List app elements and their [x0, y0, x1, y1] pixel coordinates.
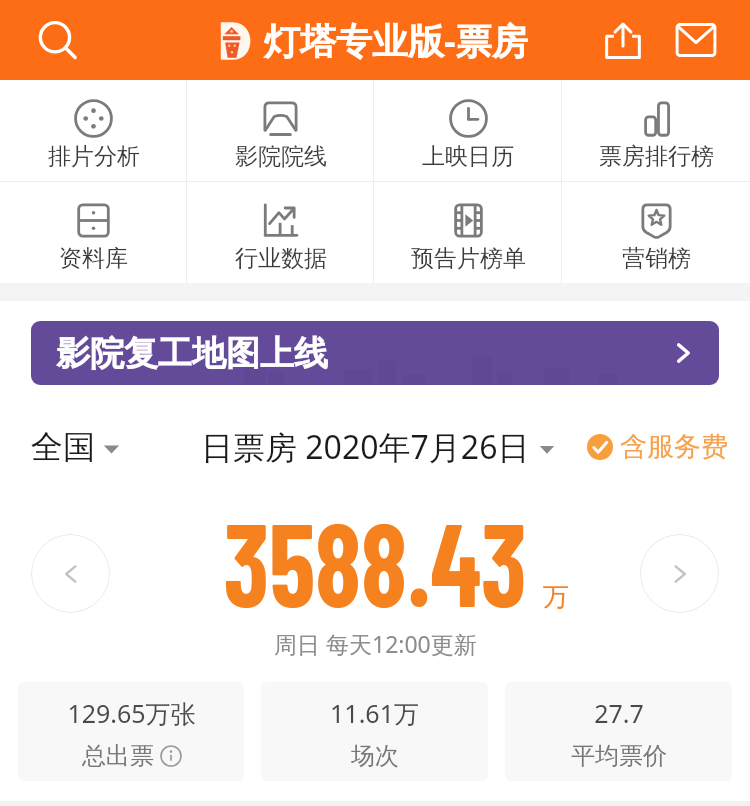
button[interactable]: 全国 [31, 427, 120, 467]
staticText: 11.61万 [330, 696, 419, 730]
button[interactable]: 27.7 [505, 682, 732, 781]
button[interactable]: 影院院线 [187, 80, 374, 181]
staticText: 上映日历 [422, 142, 514, 171]
button[interactable]: 影院复工地图上线 [31, 321, 719, 385]
button[interactable]: 日票房 2020年7月26日 [201, 425, 555, 469]
button[interactable]: 资料库 [0, 182, 187, 283]
button[interactable]: 11.61万 [261, 682, 488, 781]
staticText: 平均票价 [571, 741, 667, 771]
button[interactable]: 排片分析 [0, 80, 187, 181]
staticText: 票房排行榜 [599, 142, 714, 171]
staticText: 排片分析 [48, 142, 140, 171]
button[interactable]: 行业数据 [187, 182, 374, 283]
staticText: 万 [543, 581, 569, 614]
button[interactable]: 营销榜 [562, 182, 750, 283]
staticText: 营销榜 [622, 244, 691, 273]
staticText: 影院复工地图上线 [56, 332, 328, 375]
button[interactable]: 票房排行榜 [562, 80, 750, 181]
staticText: 27.7 [594, 696, 644, 730]
staticText: 影院院线 [235, 142, 327, 171]
button[interactable]: 129.65万张 [18, 682, 244, 781]
button[interactable]: Next day [640, 534, 719, 613]
staticText: 129.65万张 [67, 696, 196, 730]
button[interactable]: Search [24, 9, 86, 71]
button[interactable]: 上映日历 [374, 80, 562, 181]
button[interactable]: Share [602, 9, 664, 71]
staticText: 场次 [351, 741, 399, 771]
button[interactable]: Previous day [31, 534, 110, 613]
staticText: 周日 每天12:00更新 [274, 628, 477, 659]
button[interactable]: 含服务费 [587, 430, 728, 464]
staticText: 全国 [31, 427, 95, 467]
staticText: 日票房 2020年7月26日 [201, 425, 530, 469]
staticText: 3588.43 [223, 491, 527, 630]
staticText: 总出票 [82, 741, 154, 771]
staticText: 预告片榜单 [411, 244, 526, 273]
button[interactable]: Messages [664, 9, 726, 71]
staticText: 资料库 [59, 244, 128, 273]
staticText: 行业数据 [235, 244, 327, 273]
button[interactable]: 预告片榜单 [374, 182, 562, 283]
staticText: 灯塔专业版-票房 [264, 16, 528, 65]
staticText: 含服务费 [620, 430, 728, 464]
